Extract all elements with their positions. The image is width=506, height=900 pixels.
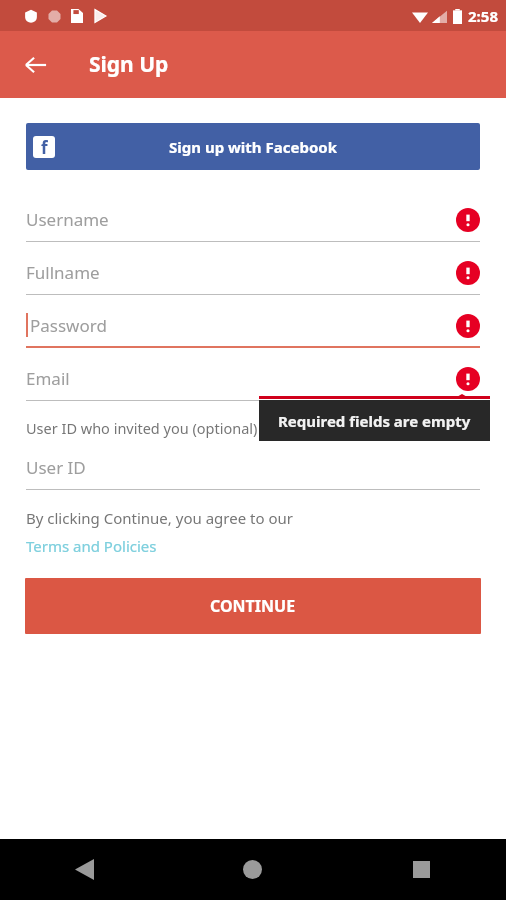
staticText: Username [26,208,109,231]
button[interactable]: Username [26,204,480,242]
button[interactable]: Error [456,367,480,391]
staticText: Sign Up [89,50,169,79]
button[interactable]: f [26,123,480,170]
staticText: User ID who invited you (optional) [26,418,258,438]
button[interactable]: Back [14,43,58,87]
button[interactable]: Password [26,310,480,348]
button[interactable]: Home [168,839,337,900]
button[interactable]: Back [0,839,168,900]
staticText: CONTINUE [210,595,296,617]
button[interactable]: Email [26,363,480,401]
button[interactable]: Terms and Policies [26,536,157,556]
staticText: Required fields are empty [278,411,471,431]
staticText: User ID [26,456,86,479]
button[interactable]: Fullname [26,257,480,295]
staticText: Email [26,367,70,390]
button[interactable]: Error [456,261,480,285]
staticText: f [41,136,48,158]
button[interactable]: CONTINUE [25,578,481,634]
staticText: 2:58 [468,6,498,26]
button[interactable]: Error [456,208,480,232]
staticText: Password [30,314,107,337]
staticText: Terms and Policies [26,536,157,556]
staticText: By clicking Continue, you agree to our [26,508,293,528]
button[interactable]: Error [456,314,480,338]
staticText: Sign up with Facebook [169,137,337,157]
button[interactable]: Recent apps [337,839,506,900]
button[interactable]: User ID [26,452,480,490]
staticText: Fullname [26,261,100,284]
